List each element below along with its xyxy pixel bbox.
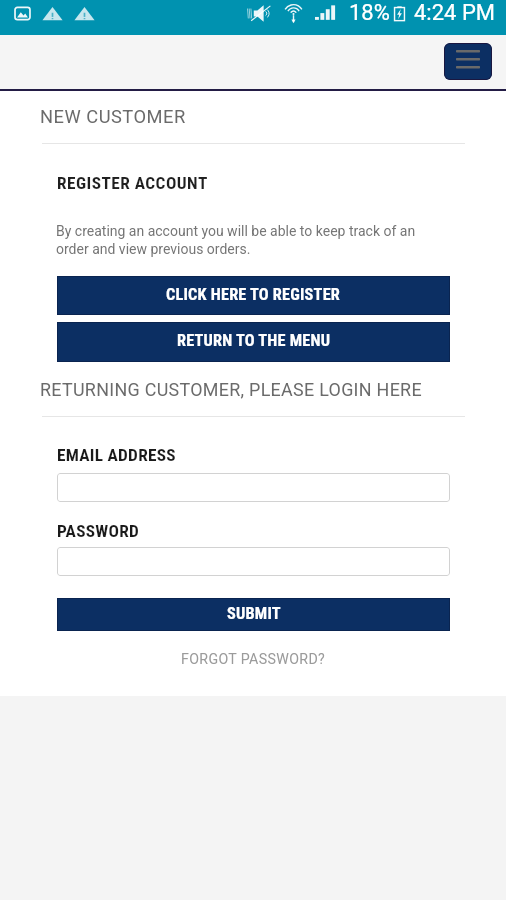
staticText: 18% <box>349 0 390 26</box>
staticText: CLICK HERE TO REGISTER <box>166 285 341 304</box>
staticText: EMAIL ADDRESS <box>57 445 176 465</box>
button[interactable]: FORGOT PASSWORD? <box>177 647 330 672</box>
staticText: SUBMIT <box>227 604 281 623</box>
staticText: RETURNING CUSTOMER, PLEASE LOGIN HERE <box>40 379 422 400</box>
button[interactable]: CLICK HERE TO REGISTER <box>57 276 450 315</box>
button[interactable]: Menu <box>444 43 492 80</box>
staticText: 4:24 PM <box>414 0 495 26</box>
staticText: RETURN TO THE MENU <box>177 331 331 350</box>
button[interactable] <box>57 547 450 576</box>
staticText: NEW CUSTOMER <box>40 106 186 127</box>
staticText: PASSWORD <box>57 521 140 541</box>
button[interactable] <box>57 473 450 502</box>
staticText: REGISTER ACCOUNT <box>57 173 208 193</box>
button[interactable]: SUBMIT <box>57 598 450 631</box>
staticText: By creating an account you will be able … <box>56 223 422 257</box>
button[interactable]: RETURN TO THE MENU <box>57 322 450 362</box>
